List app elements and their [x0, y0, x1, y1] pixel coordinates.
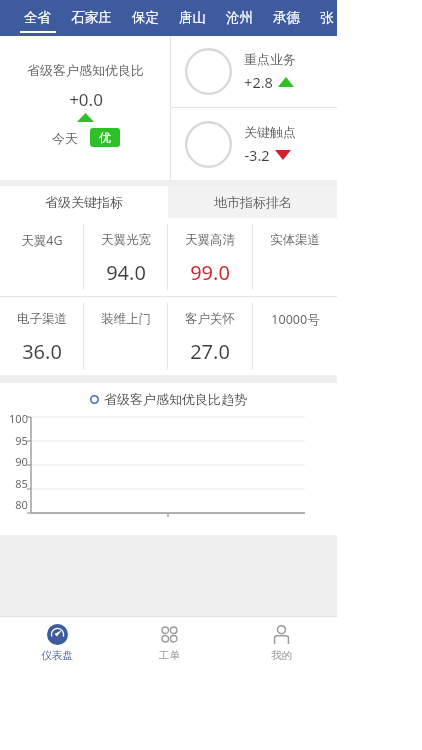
button[interactable]: 工单	[113, 617, 225, 669]
button[interactable]: 全省	[14, 0, 61, 36]
staticText: 关键触点	[244, 124, 296, 140]
staticText: 省级客户感知优良比	[27, 62, 144, 78]
staticText: 地市指标排名	[214, 194, 292, 210]
staticText: 电子渠道	[17, 311, 67, 327]
button[interactable]: 张	[310, 0, 337, 36]
staticText: 省级关键指标	[45, 194, 123, 210]
staticText: 100	[9, 411, 28, 423]
staticText: 石家庄	[71, 9, 112, 26]
button[interactable]: 关键触点	[171, 108, 337, 180]
staticText: 99.0	[190, 259, 230, 286]
staticText: 85	[15, 476, 28, 488]
button[interactable]: 地市指标排名	[168, 186, 337, 218]
staticText: 实体渠道	[270, 232, 320, 248]
button[interactable]: 石家庄	[61, 0, 122, 36]
staticText: 27.0	[190, 338, 230, 365]
button[interactable]: 省级关键指标	[0, 186, 168, 218]
staticText: 天翼光宽	[101, 232, 151, 248]
staticText: 36.0	[22, 338, 62, 365]
button[interactable]: 天翼高清	[168, 218, 252, 296]
staticText: 沧州	[226, 9, 253, 26]
staticText: 工单	[159, 649, 180, 662]
staticText: 我的	[271, 649, 292, 662]
button[interactable]: 10000号	[253, 297, 337, 375]
staticText: 优	[99, 130, 111, 145]
staticText: 天翼高清	[185, 232, 235, 248]
staticText: 今天	[52, 130, 78, 146]
staticText: 重点业务	[244, 51, 296, 67]
staticText: +0.0	[69, 88, 103, 111]
button[interactable]: 天翼4G	[0, 218, 83, 296]
button[interactable]: 天翼光宽	[84, 218, 167, 296]
staticText: 省级客户感知优良比趋势	[104, 391, 247, 407]
staticText: 保定	[132, 9, 159, 26]
staticText: 90	[15, 454, 28, 466]
staticText: +2.8	[244, 72, 273, 92]
button[interactable]: 仪表盘	[0, 617, 113, 669]
button[interactable]: 沧州	[216, 0, 263, 36]
staticText: 唐山	[179, 9, 206, 26]
staticText: 80	[15, 497, 28, 509]
staticText: 仪表盘	[41, 649, 73, 662]
button[interactable]: 唐山	[169, 0, 216, 36]
staticText: 张	[320, 9, 327, 26]
staticText: 装维上门	[101, 311, 151, 327]
staticText: -3.2	[244, 145, 270, 165]
staticText: 承德	[273, 9, 300, 26]
staticText: 全省	[24, 9, 51, 26]
staticText: 天翼4G	[21, 232, 63, 249]
staticText: 95	[15, 433, 28, 445]
button[interactable]: 装维上门	[84, 297, 167, 375]
button[interactable]: 承德	[263, 0, 310, 36]
button[interactable]: 保定	[122, 0, 169, 36]
button[interactable]: 重点业务	[171, 36, 337, 107]
button[interactable]: 电子渠道	[0, 297, 83, 375]
button[interactable]: 我的	[225, 617, 337, 669]
staticText: 94.0	[106, 259, 146, 286]
staticText: 10000号	[271, 311, 320, 328]
button[interactable]: 客户关怀	[168, 297, 252, 375]
staticText: 客户关怀	[185, 311, 235, 327]
button[interactable]: 实体渠道	[253, 218, 337, 296]
